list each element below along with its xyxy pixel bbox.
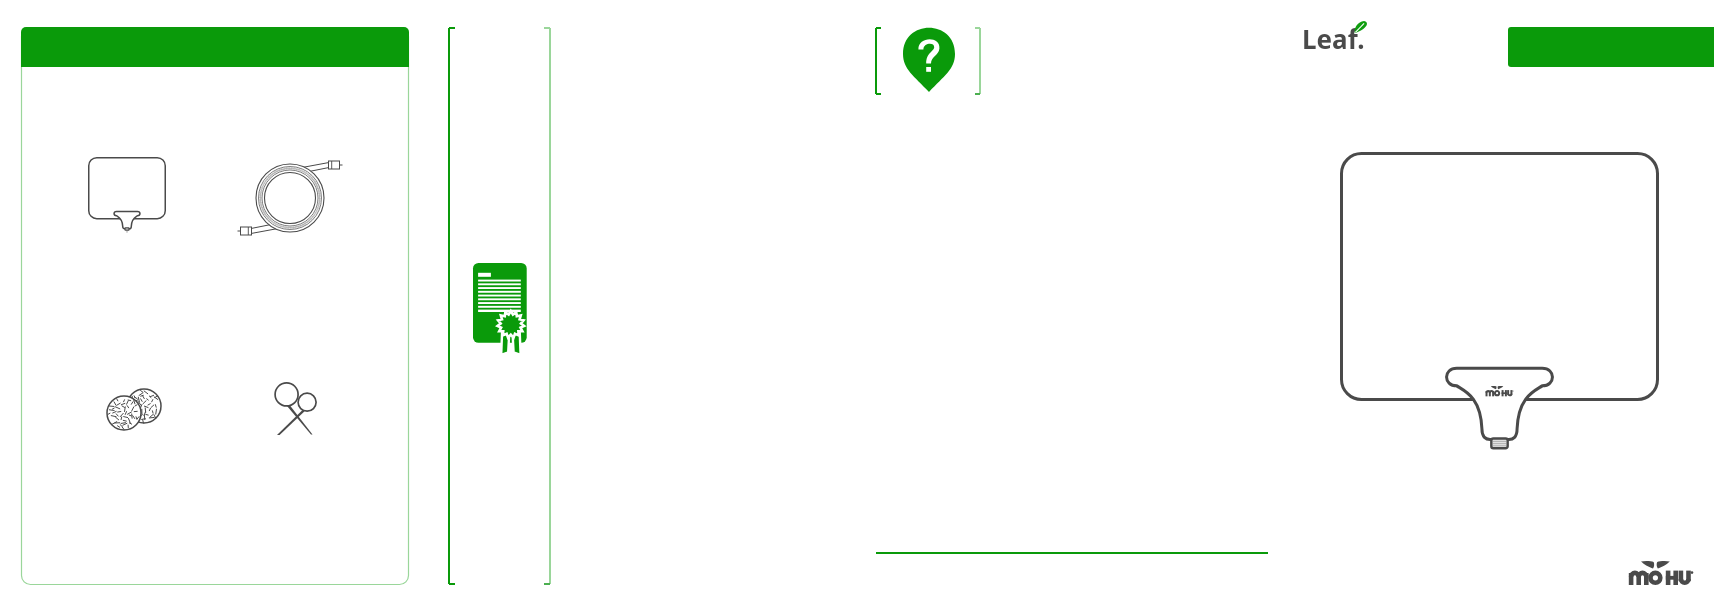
button[interactable]: [21, 27, 409, 585]
button[interactable]: [1508, 27, 1714, 67]
button[interactable]: Mohu: [1628, 559, 1694, 585]
button[interactable]: Leaf: [1302, 21, 1365, 56]
button[interactable]: Coaxial cable: [238, 150, 346, 242]
staticText: Leaf.: [1302, 21, 1365, 56]
button[interactable]: Mohu Leaf antenna: [1340, 152, 1670, 472]
button[interactable]: Leaf antenna: [88, 157, 166, 236]
button[interactable]: Push pins: [266, 375, 318, 435]
button[interactable]: Warranty certificate: [473, 263, 533, 355]
button[interactable]: Adhesive discs: [100, 375, 168, 433]
button[interactable]: Help: [903, 28, 955, 92]
